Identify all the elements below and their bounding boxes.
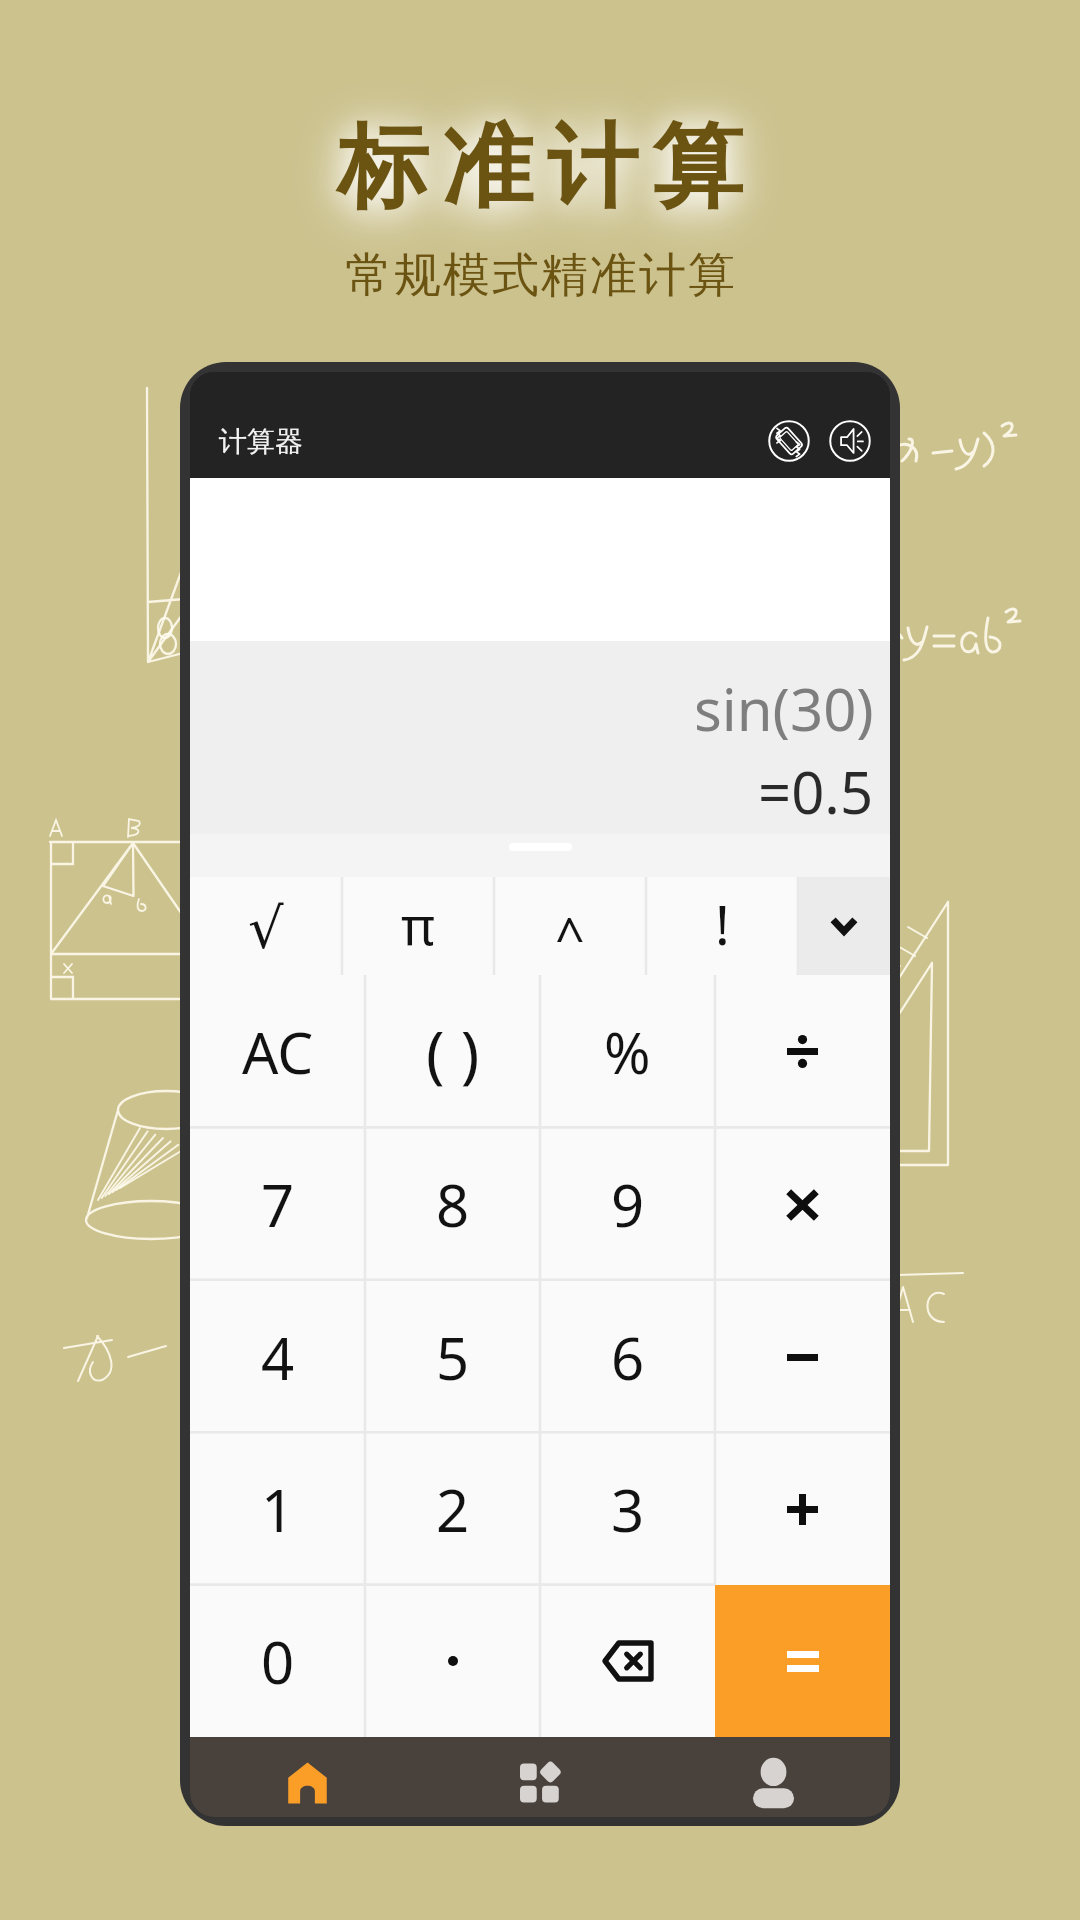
button[interactable]	[365, 1585, 540, 1737]
button[interactable]: π	[342, 877, 494, 975]
staticText: =0.5	[758, 752, 874, 831]
button[interactable]: 4	[190, 1281, 365, 1433]
staticText: √	[248, 896, 284, 961]
button[interactable]	[715, 1281, 890, 1433]
staticText: 3	[611, 1470, 645, 1549]
staticText: 标准计算	[330, 110, 750, 225]
staticText: π	[401, 889, 435, 960]
staticText: 1	[261, 1470, 295, 1549]
staticText: 5	[436, 1318, 470, 1397]
button[interactable]: 5	[365, 1281, 540, 1433]
staticText: 2	[436, 1470, 470, 1549]
button[interactable]: 7	[190, 1128, 365, 1281]
staticText: AC	[242, 1013, 314, 1091]
button[interactable]: ^	[494, 877, 646, 975]
staticText: 0	[261, 1622, 295, 1701]
button[interactable]: 8	[365, 1128, 540, 1281]
button[interactable]: AC	[190, 975, 365, 1128]
staticText: 6	[611, 1318, 645, 1397]
staticText: !	[715, 886, 730, 961]
staticText: 7	[261, 1165, 295, 1244]
staticText: 4	[261, 1318, 295, 1397]
staticText: sin(30)	[694, 669, 874, 748]
staticText: 标准计算	[330, 110, 750, 225]
button[interactable]: √	[190, 877, 342, 975]
button[interactable]	[715, 1585, 890, 1737]
button[interactable]: 1	[190, 1433, 365, 1585]
button[interactable]: Vibration	[760, 412, 818, 470]
button[interactable]: Sound	[821, 412, 879, 470]
button[interactable]	[540, 1585, 715, 1737]
button[interactable]: !	[646, 877, 798, 975]
staticText: ( )	[426, 1010, 480, 1094]
staticText: 常规模式精准计算	[344, 246, 736, 305]
staticText: 8	[436, 1165, 470, 1244]
button[interactable]: 9	[540, 1128, 715, 1281]
staticText: 计算器	[219, 424, 303, 459]
staticText: 9	[611, 1165, 645, 1244]
button[interactable]: ( )	[365, 975, 540, 1128]
staticText: ^	[555, 900, 585, 971]
button[interactable]	[715, 1433, 890, 1585]
button[interactable]: Home	[190, 1737, 424, 1817]
button[interactable]: Collapse function keys	[798, 877, 890, 975]
button[interactable]: 3	[540, 1433, 715, 1585]
button[interactable]: 6	[540, 1281, 715, 1433]
button[interactable]: Profile	[657, 1737, 890, 1817]
staticText: 标准计算	[330, 110, 750, 225]
button[interactable]	[715, 1128, 890, 1281]
button[interactable]: Apps	[424, 1737, 657, 1817]
button[interactable]: 2	[365, 1433, 540, 1585]
button[interactable]: 0	[190, 1585, 365, 1737]
staticText: %	[604, 1014, 651, 1090]
button[interactable]: %	[540, 975, 715, 1128]
button[interactable]	[715, 975, 890, 1128]
